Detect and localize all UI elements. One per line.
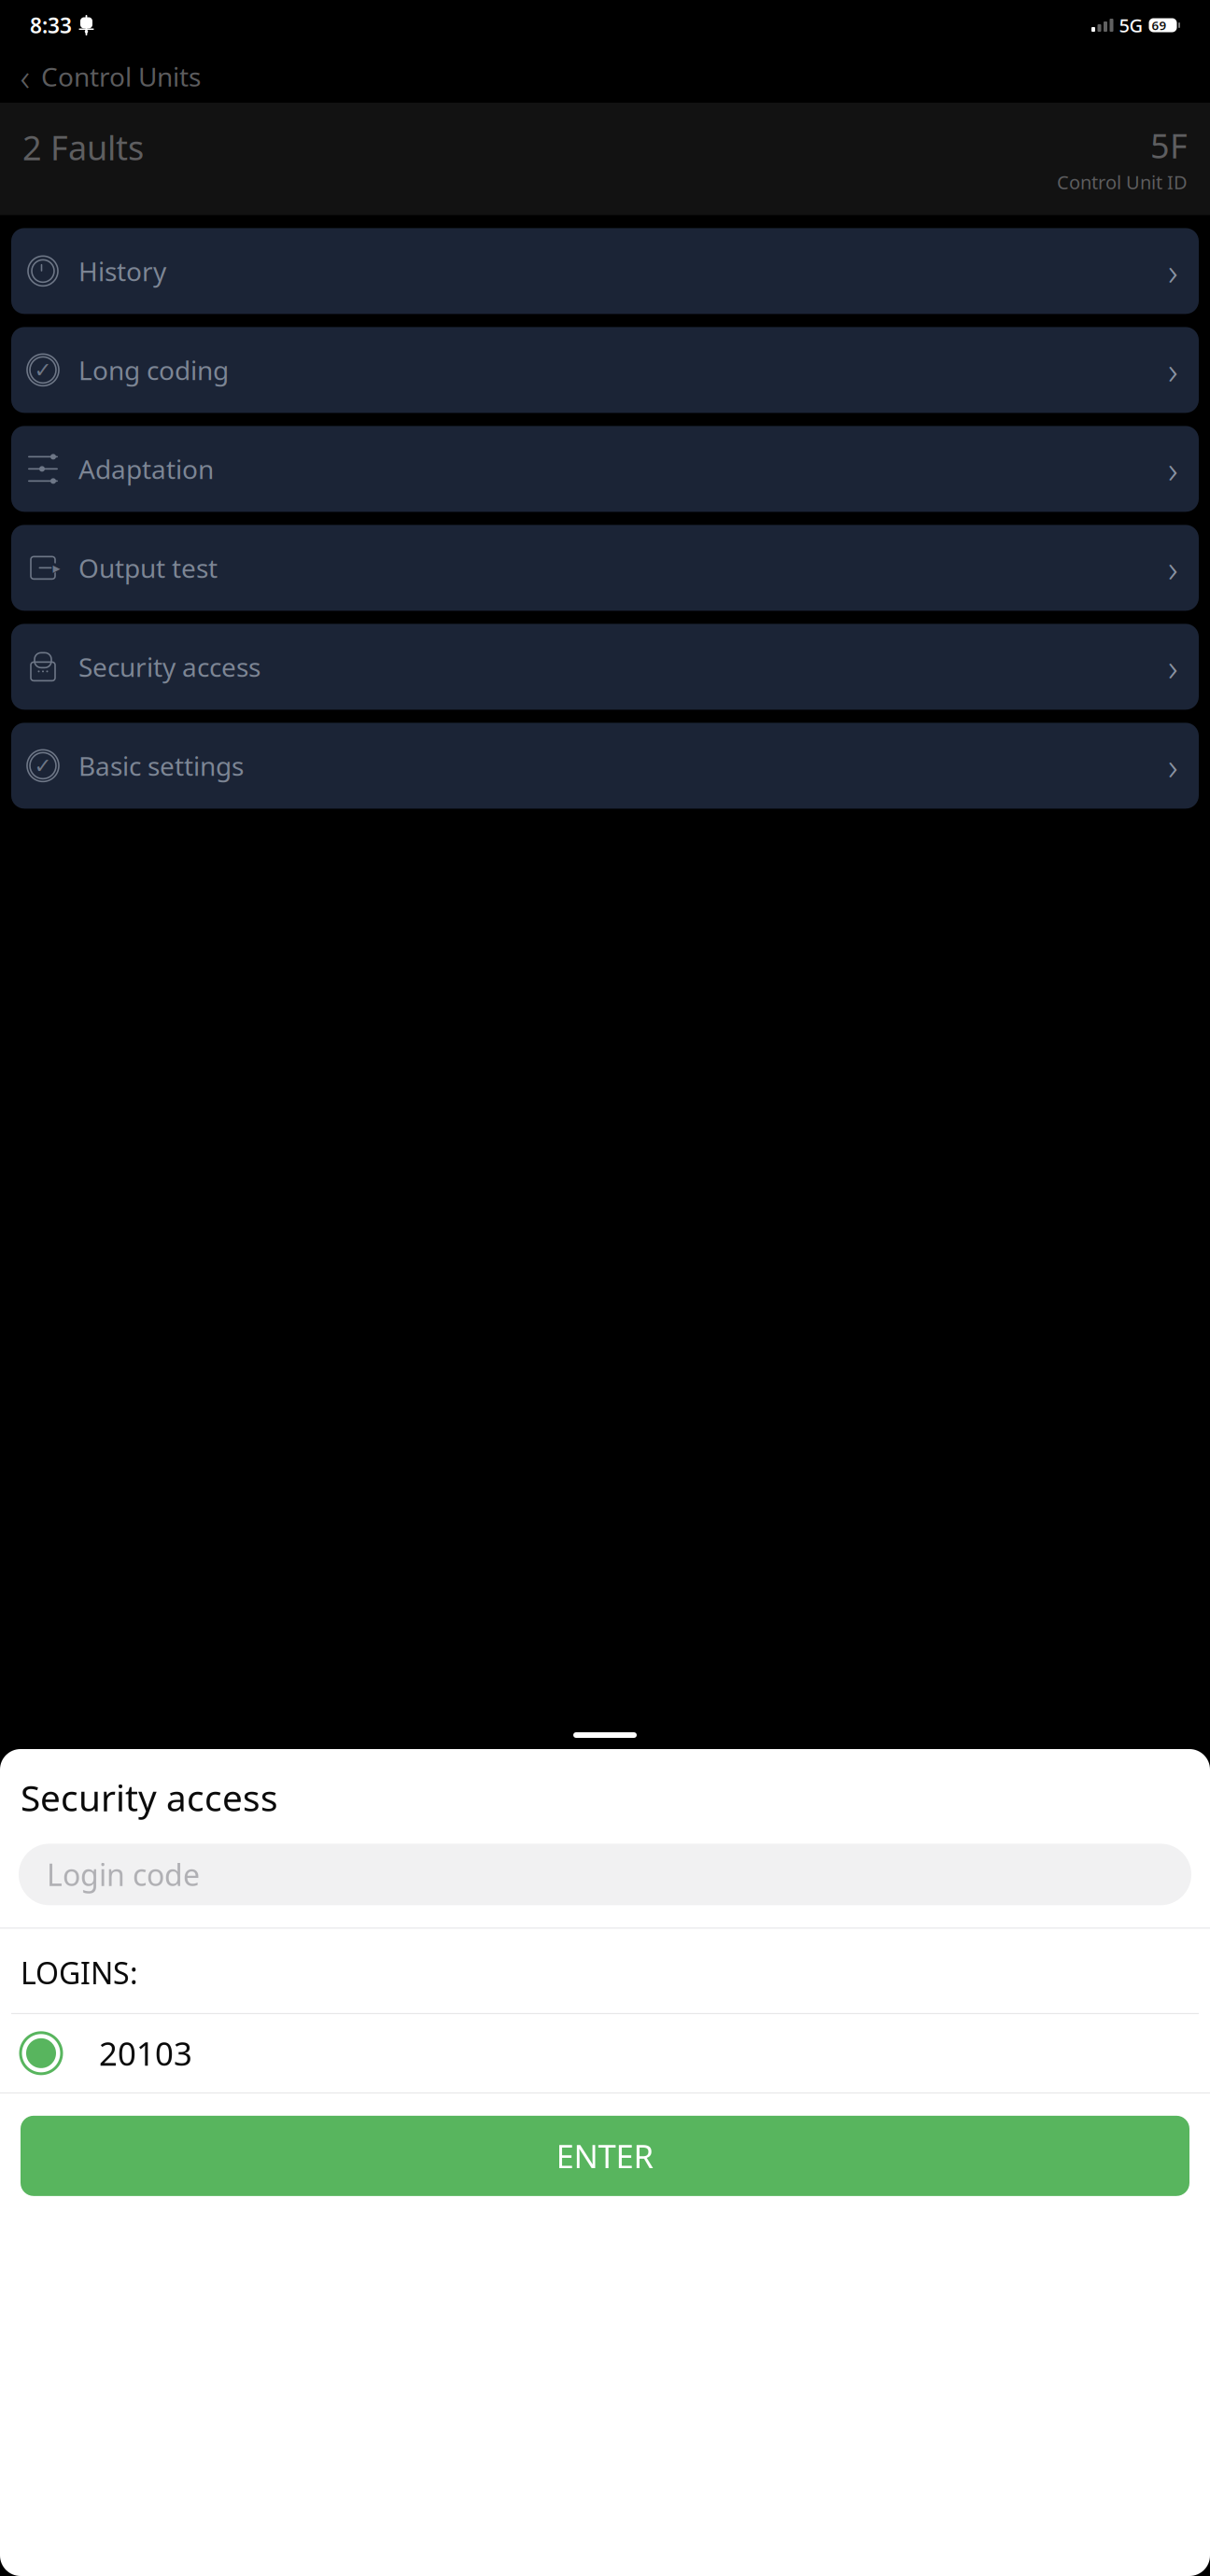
staticText: › [1168, 543, 1178, 593]
staticText: Basic settings [78, 748, 244, 783]
staticText: ‹ [20, 52, 30, 101]
staticText: 20103 [99, 2032, 192, 2075]
staticText: Control Units [41, 59, 201, 94]
button[interactable]: 20103 [0, 2014, 1210, 2092]
staticText: 2 Faults [22, 125, 144, 170]
button[interactable]: ENTER [21, 2116, 1189, 2196]
staticText: LOGINS: [21, 1953, 138, 1992]
staticText: › [1168, 642, 1178, 692]
staticText: ENTER [556, 2134, 654, 2177]
staticText: Control Unit ID [1057, 170, 1188, 195]
staticText: › [1168, 444, 1178, 494]
staticText: 69 [1152, 17, 1167, 33]
staticText: ✓ [34, 358, 52, 382]
button[interactable]: ‹ [9, 52, 210, 101]
staticText: Security access [78, 649, 260, 684]
staticText: ▸ [53, 559, 60, 576]
button[interactable]: Login code [19, 1844, 1191, 1905]
staticText: › [1168, 741, 1178, 790]
button[interactable]: ✓ [11, 327, 1199, 413]
staticText: History [78, 254, 166, 288]
staticText: Security access [21, 1773, 278, 1821]
staticText: Adaptation [78, 452, 214, 486]
button[interactable]: ▸ [11, 525, 1199, 611]
staticText: › [1168, 345, 1178, 395]
staticText: Login code [47, 1855, 200, 1894]
staticText: Output test [78, 550, 218, 585]
button[interactable]: History [11, 228, 1199, 314]
button[interactable]: Security access [11, 624, 1199, 710]
staticText: ✓ [34, 754, 52, 778]
button[interactable]: ✓ [11, 723, 1199, 809]
staticText: Long coding [78, 353, 229, 387]
staticText: 5G [1119, 13, 1143, 38]
staticText: 8:33 [30, 11, 72, 39]
button[interactable]: Adaptation [11, 426, 1199, 512]
staticText: › [1168, 246, 1178, 296]
staticText: 5F [1150, 123, 1188, 168]
